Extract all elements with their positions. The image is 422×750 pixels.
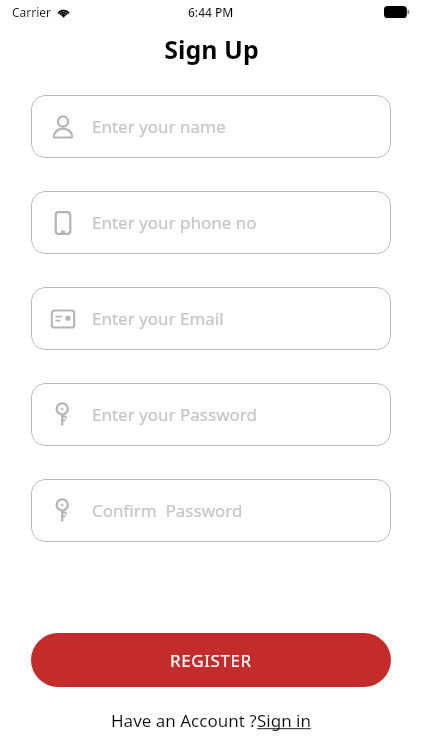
button[interactable]: Enter your name bbox=[31, 95, 391, 158]
staticText: 6:44 PM bbox=[188, 4, 234, 20]
button[interactable]: Enter your Email bbox=[31, 287, 391, 350]
staticText: REGISTER bbox=[170, 649, 252, 672]
staticText: Confirm Password bbox=[92, 499, 243, 522]
button[interactable]: REGISTER bbox=[31, 633, 391, 687]
staticText: Sign in bbox=[257, 709, 311, 732]
button[interactable]: Enter your Password bbox=[31, 383, 391, 446]
staticText: Enter your phone no bbox=[92, 211, 257, 234]
staticText: Have an Account ? bbox=[111, 709, 257, 732]
staticText: Enter your name bbox=[92, 115, 226, 138]
button[interactable]: Confirm Password bbox=[31, 479, 391, 542]
staticText: Carrier bbox=[12, 4, 52, 20]
staticText: Enter your Password bbox=[92, 403, 257, 426]
button[interactable]: Sign in bbox=[257, 709, 311, 732]
button[interactable]: Enter your phone no bbox=[31, 191, 391, 254]
staticText: Enter your Email bbox=[92, 307, 224, 330]
staticText: Sign Up bbox=[164, 32, 259, 66]
